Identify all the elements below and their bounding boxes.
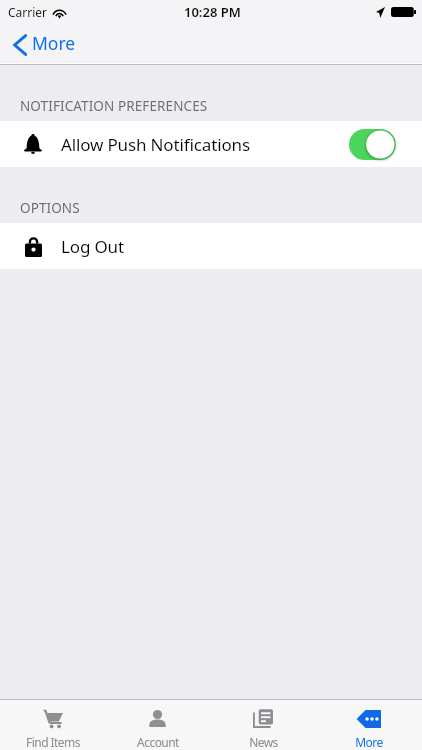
staticText: 10:28 PM — [184, 3, 241, 21]
button[interactable]: More — [316, 699, 422, 750]
button[interactable]: Allow Push Notifications toggle — [349, 129, 398, 160]
staticText: News — [249, 734, 278, 750]
button[interactable]: News — [210, 699, 316, 750]
staticText: Carrier — [8, 4, 48, 20]
button[interactable]: Log Out — [0, 223, 422, 269]
staticText: More — [32, 31, 76, 55]
button[interactable]: Account — [105, 699, 210, 750]
staticText: Allow Push Notifications — [61, 133, 250, 156]
button[interactable]: More — [0, 24, 422, 65]
staticText: OPTIONS — [20, 199, 80, 217]
button[interactable]: Find Items — [0, 699, 105, 750]
staticText: More — [355, 734, 383, 750]
staticText: Account — [137, 734, 179, 750]
button[interactable]: Allow Push Notifications — [0, 121, 422, 167]
staticText: NOTIFICATION PREFERENCES — [20, 97, 208, 115]
staticText: Find Items — [26, 734, 80, 750]
staticText: Log Out — [61, 235, 124, 258]
